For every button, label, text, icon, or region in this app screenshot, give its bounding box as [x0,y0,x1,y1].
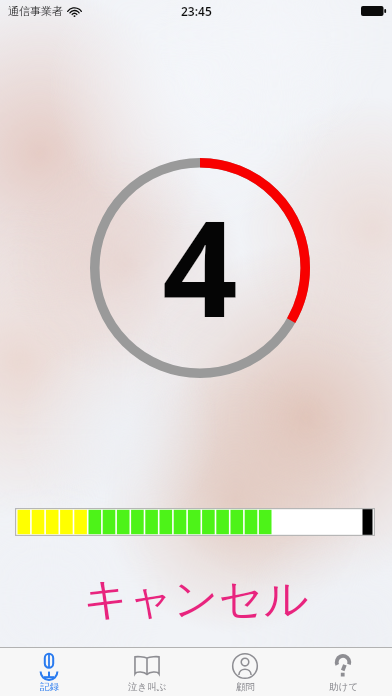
other: 助けて [329,652,357,680]
staticText: 助けて [329,681,358,693]
staticText: キャンセル [83,572,309,627]
other: 記録 [35,652,63,680]
button[interactable]: 助けて [294,648,392,696]
staticText: 記録 [40,681,59,693]
other: 顧問 [231,652,259,680]
button[interactable]: 記録 [0,648,98,696]
staticText: 泣き叫ぶ [128,681,167,693]
button[interactable]: 泣き叫ぶ [98,648,196,696]
staticText: 通信事業者 [8,4,63,18]
staticText: 4 [162,176,238,356]
other: 泣き叫ぶ [133,652,161,680]
staticText: 顧問 [236,681,255,693]
staticText: 23:45 [181,3,212,19]
button[interactable]: キャンセル [0,570,392,628]
button[interactable]: 顧問 [196,648,294,696]
